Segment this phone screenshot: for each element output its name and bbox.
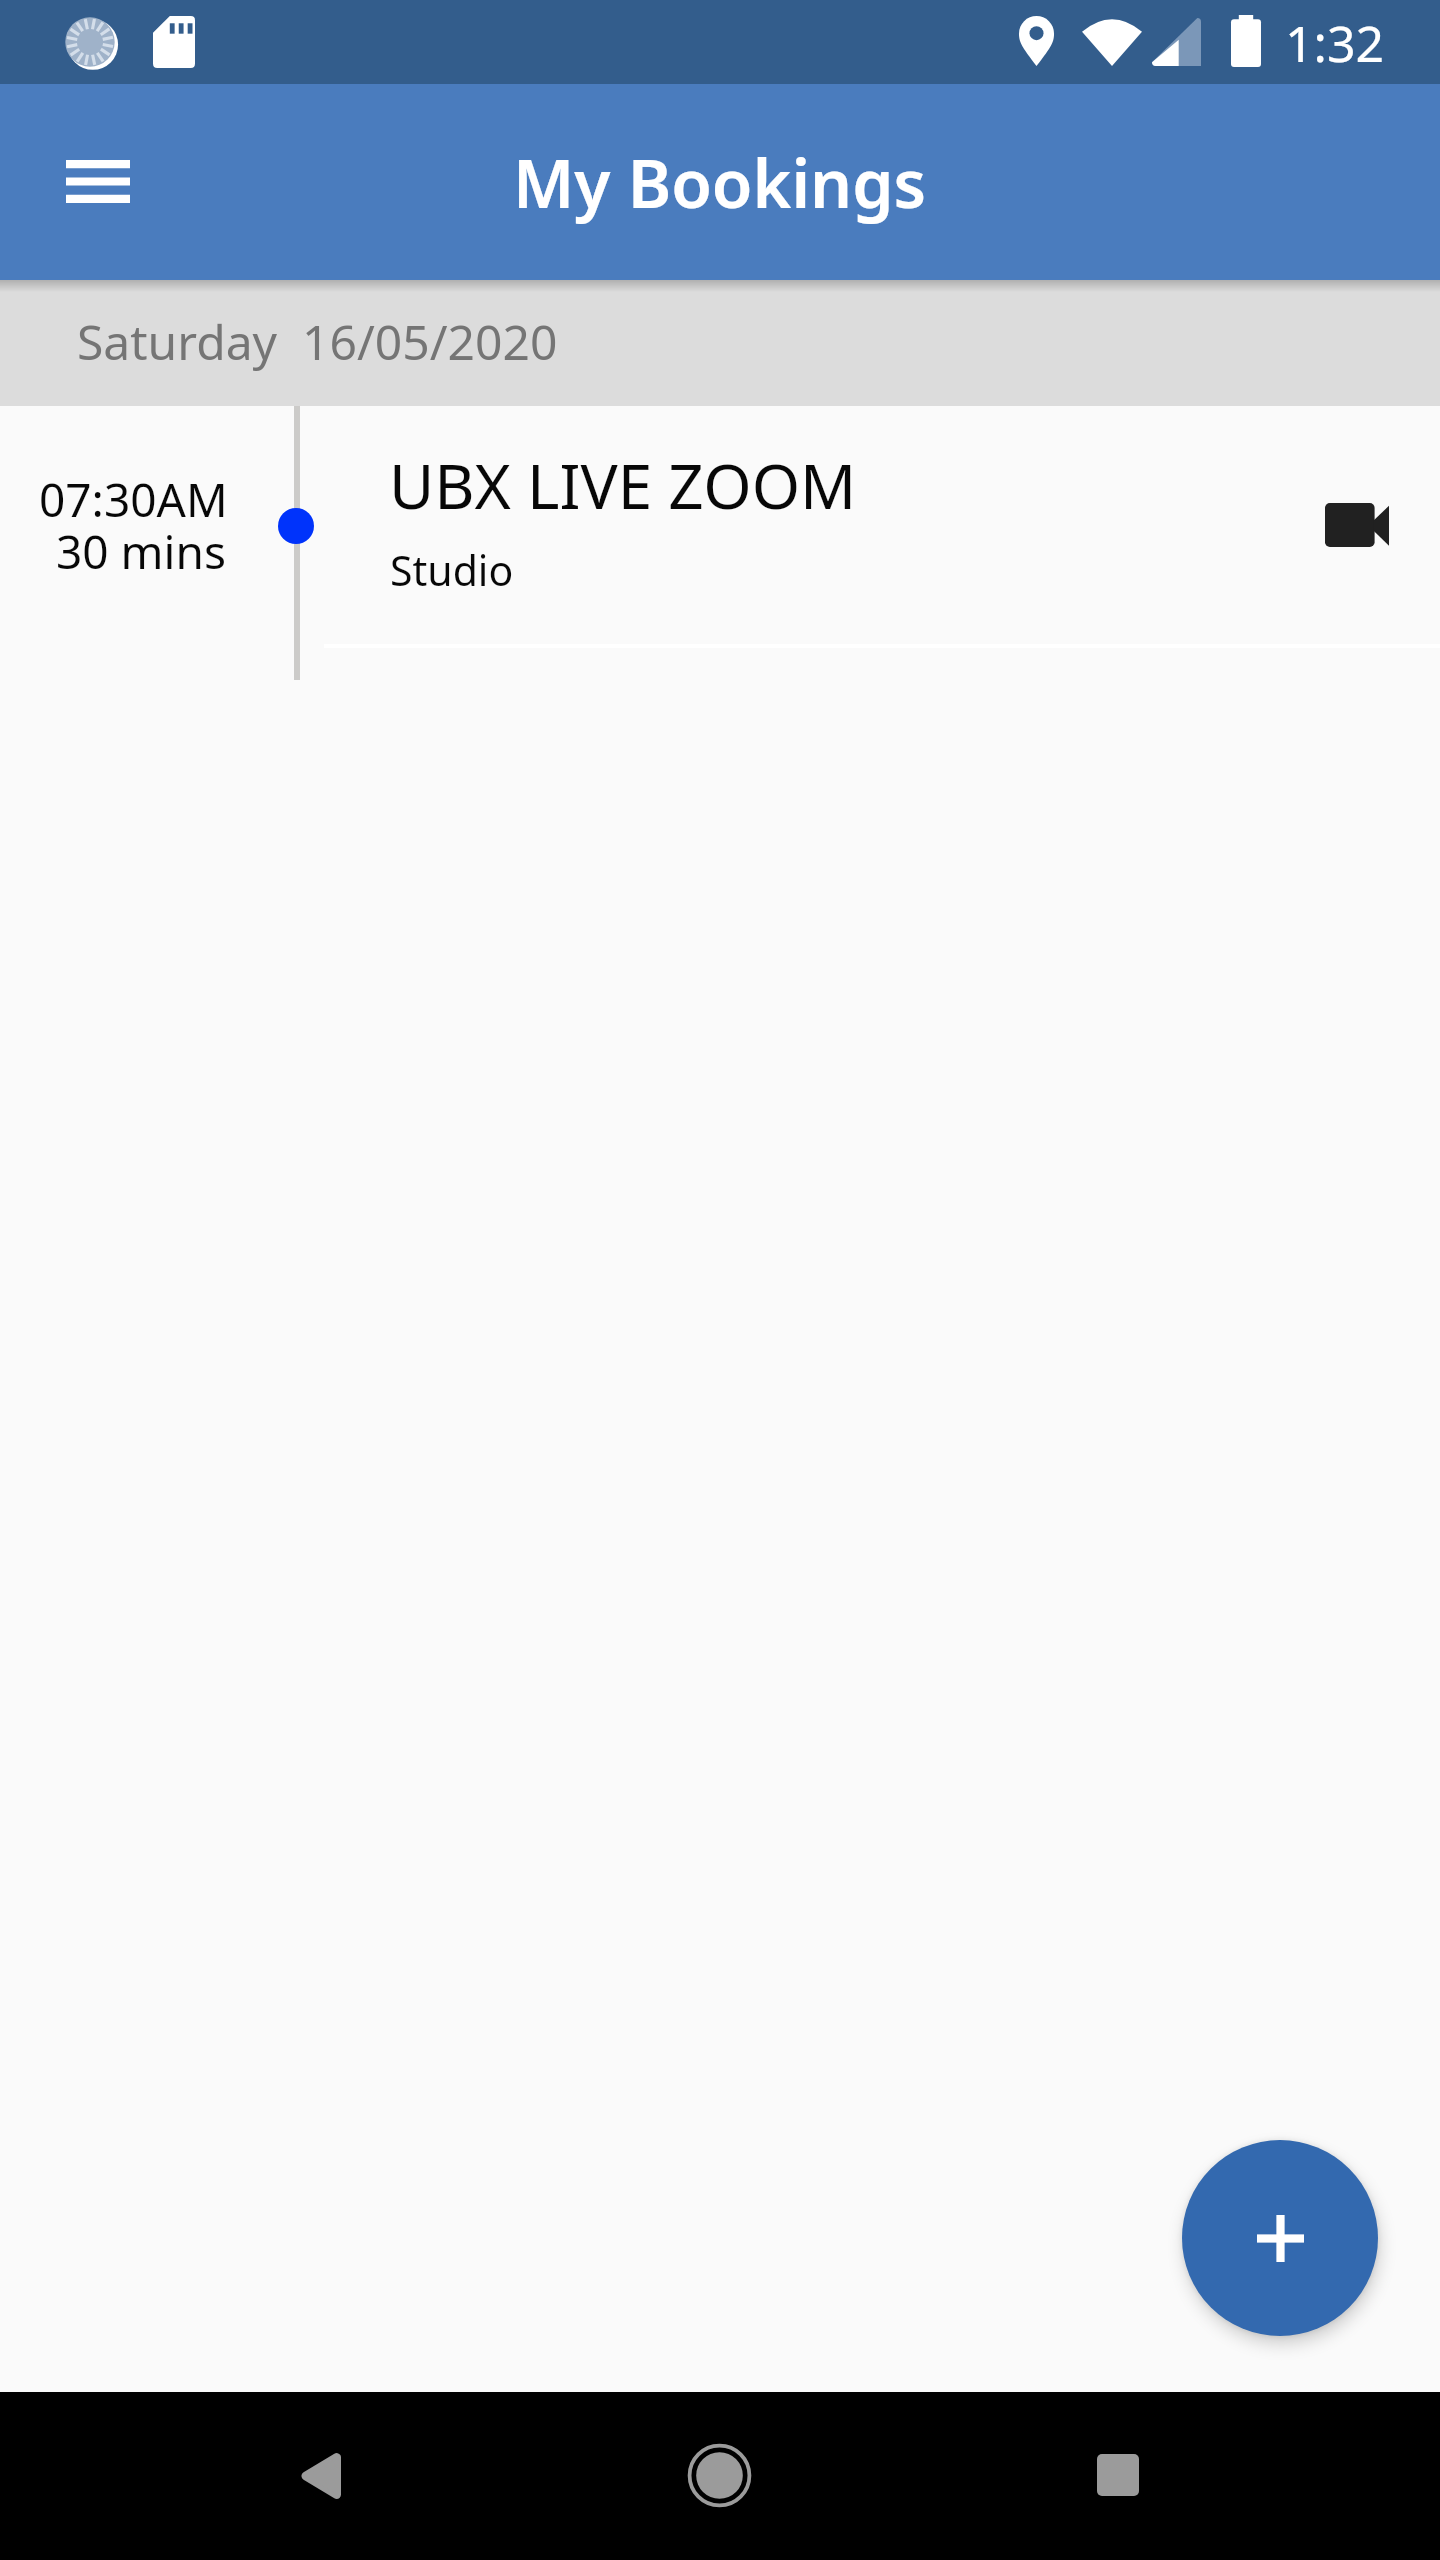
button[interactable]: 07:30AM [0,406,1440,646]
staticText: UBX LIVE ZOOM [389,443,857,527]
staticText: 1:32 [1285,9,1385,77]
button[interactable]: Home [659,2415,779,2535]
button[interactable]: Saturday 16/05/2020 [0,280,1440,406]
staticText: 30 mins [56,520,226,583]
button[interactable]: Add booking [1182,2140,1378,2336]
staticText: Saturday 16/05/2020 [77,309,558,374]
staticText: 07:30AM [39,468,228,531]
staticText: My Bookings [513,137,927,227]
button[interactable]: Join video meeting [1302,475,1412,575]
button[interactable]: Open navigation drawer [40,123,156,239]
button[interactable]: Recent apps [1058,2415,1178,2535]
staticText: Studio [390,542,514,598]
button[interactable]: Back [261,2416,381,2536]
